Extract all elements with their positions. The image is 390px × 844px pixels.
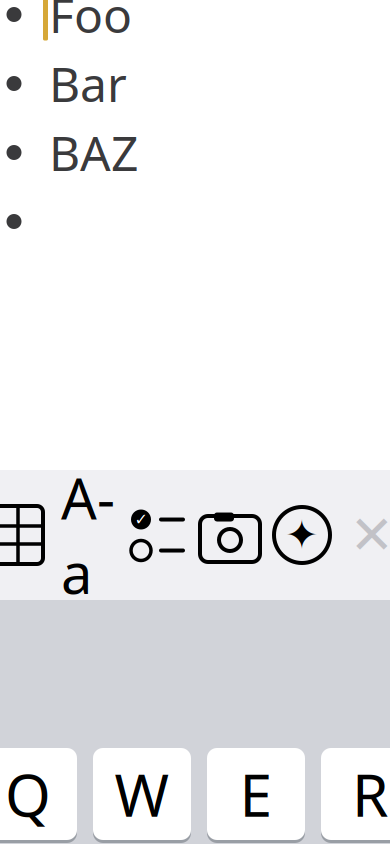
button[interactable]: Q: [0, 746, 77, 841]
button[interactable]: Markup: [271, 504, 333, 566]
staticText: ✓: [134, 510, 147, 529]
staticText: ✦: [285, 512, 319, 558]
staticText: R: [352, 755, 388, 833]
button[interactable]: Table: [0, 504, 49, 566]
staticText: Aa: [61, 461, 115, 609]
staticText: BAZ: [49, 121, 138, 184]
staticText: Foo: [49, 0, 132, 46]
staticText: ✕: [349, 505, 390, 565]
button[interactable]: Checklist: [127, 504, 189, 566]
button[interactable]: E: [207, 746, 305, 841]
button[interactable]: R: [321, 746, 390, 841]
staticText: Q: [5, 755, 51, 833]
staticText: Bar: [49, 52, 127, 115]
staticText: W: [114, 755, 169, 833]
staticText: E: [239, 755, 272, 833]
button[interactable]: Camera: [197, 504, 263, 566]
button[interactable]: Close keyboard: [341, 504, 390, 566]
button[interactable]: Format: [57, 504, 119, 566]
button[interactable]: W: [93, 746, 191, 841]
